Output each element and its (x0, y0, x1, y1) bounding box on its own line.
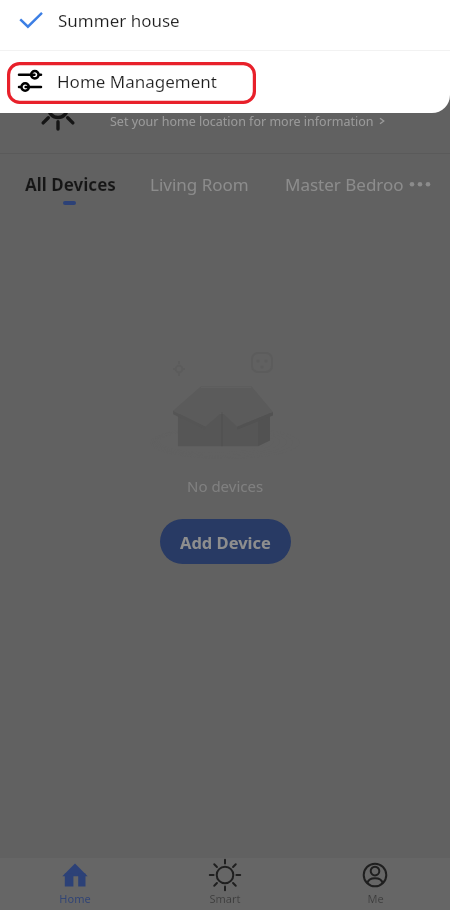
button[interactable]: Me (300, 862, 450, 906)
staticText: No devices (187, 476, 264, 496)
button[interactable]: Summer house (0, 0, 450, 41)
staticText: All Devices (25, 173, 116, 196)
staticText: Add Device (180, 531, 271, 553)
staticText: Master Bedroo (285, 173, 404, 196)
staticText: Set your home location for more informat… (110, 113, 374, 130)
button[interactable]: More rooms (402, 170, 438, 202)
staticText: Me (367, 891, 384, 906)
staticText: Living Room (150, 173, 249, 196)
button[interactable]: All Devices (25, 162, 116, 210)
button[interactable]: Add Device (160, 519, 291, 564)
staticText: Summer house (58, 9, 180, 32)
staticText: Home (59, 891, 91, 906)
staticText: Home Management (57, 70, 217, 93)
button[interactable]: Living Room (150, 162, 249, 210)
button[interactable]: Home (0, 862, 150, 906)
button[interactable]: Home Management (0, 61, 450, 101)
button[interactable]: Master Bedroo (285, 162, 404, 210)
button[interactable]: Smart (150, 862, 300, 906)
button[interactable]: Set your home location for more informat… (0, 108, 386, 134)
staticText: Smart (209, 891, 241, 906)
